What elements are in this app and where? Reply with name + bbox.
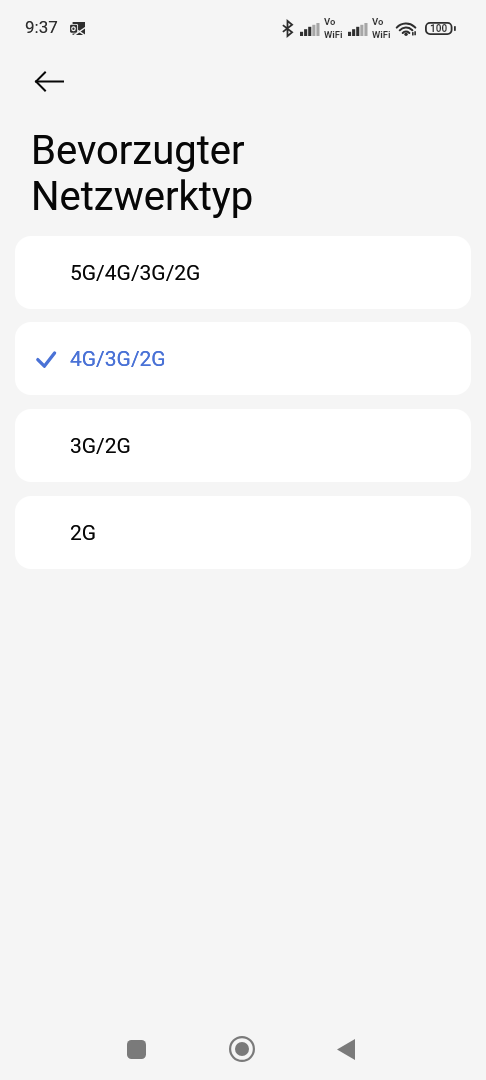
button[interactable]: 5G/4G/3G/2G (15, 236, 471, 309)
staticText: 5G/4G/3G/2G (70, 261, 201, 286)
staticText: 2G (70, 521, 97, 546)
button[interactable]: Recent apps (108, 1021, 164, 1077)
staticText: 9:37 (25, 17, 58, 37)
staticText: 4G/3G/2G (70, 347, 166, 372)
staticText: Bevorzugter Netzwerktyp (31, 127, 254, 220)
staticText: 3G/2G (70, 434, 131, 459)
staticText: 3G/2G (70, 434, 131, 459)
staticText: Vo (372, 16, 384, 27)
staticText: 2G (70, 521, 97, 546)
staticText: Bevorzugter Netzwerktyp (31, 127, 254, 220)
staticText: 4G/3G/2G (70, 347, 166, 372)
button[interactable]: Back (318, 1021, 374, 1077)
staticText: 100 (430, 23, 448, 35)
staticText: 5G/4G/3G/2G (70, 261, 201, 286)
button[interactable]: Home (215, 1021, 271, 1077)
staticText: WiFi (324, 29, 343, 40)
button[interactable]: 2G (15, 496, 471, 569)
button[interactable]: 3G/2G (15, 409, 471, 482)
staticText: WiFi (372, 29, 391, 40)
button[interactable]: 4G/3G/2G (15, 322, 471, 395)
staticText: Vo (324, 16, 336, 27)
button[interactable]: Back (25, 57, 73, 105)
staticText: 9:37 (25, 17, 58, 37)
